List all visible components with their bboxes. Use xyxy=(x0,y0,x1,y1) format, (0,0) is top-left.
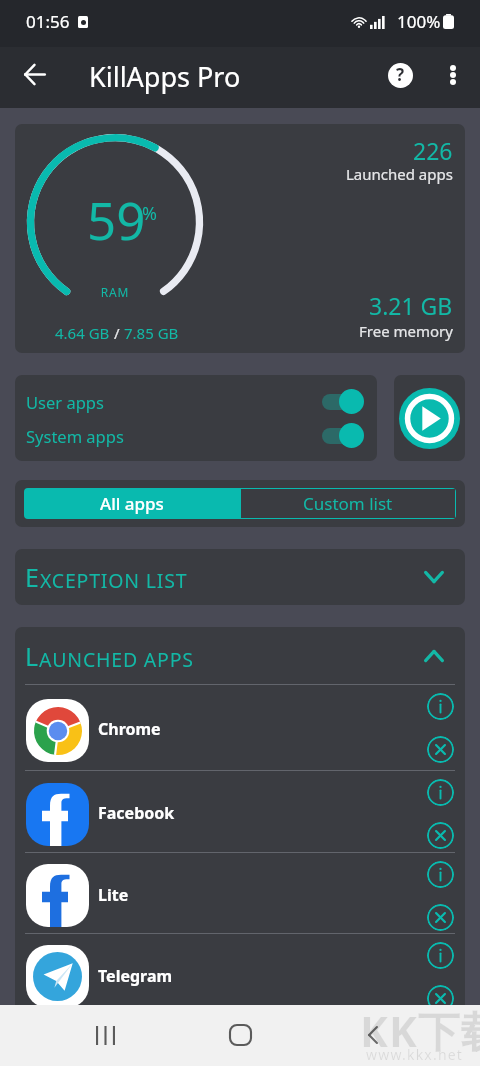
staticText: Telegram xyxy=(98,965,173,987)
button[interactable]: App info xyxy=(427,942,454,969)
staticText: Custom list xyxy=(303,492,393,515)
button[interactable]: Close app xyxy=(427,822,454,849)
button[interactable]: Close app xyxy=(427,904,454,931)
staticText: 7.85 GB xyxy=(124,323,179,343)
button[interactable]: Home xyxy=(215,1010,265,1060)
staticText: 4.64 GB xyxy=(55,323,110,343)
staticText: ? xyxy=(396,63,405,86)
staticText: KK下载 xyxy=(360,1002,480,1059)
staticText: Facebook xyxy=(98,802,175,824)
staticText: 226 xyxy=(413,135,453,166)
staticText: % xyxy=(142,201,157,226)
staticText: KillApps Pro xyxy=(89,58,241,95)
staticText: E xyxy=(25,560,40,594)
button[interactable]: App info xyxy=(427,779,454,806)
staticText: www.kkx.net xyxy=(366,1045,464,1064)
button[interactable]: Telegram xyxy=(15,933,465,1014)
button[interactable]: Kill apps xyxy=(394,375,465,461)
button[interactable]: App info xyxy=(427,693,454,720)
staticText: Lite xyxy=(98,884,129,906)
button[interactable]: User apps xyxy=(26,389,364,414)
button[interactable]: Close app xyxy=(427,736,454,763)
button[interactable]: App info xyxy=(427,861,454,888)
button[interactable]: Help xyxy=(378,53,423,98)
staticText: RAM xyxy=(40,284,190,300)
button[interactable]: Back xyxy=(348,1010,398,1060)
staticText: L xyxy=(25,639,39,673)
staticText: XCEPTION LIST xyxy=(40,567,188,594)
staticText: 3.21 GB xyxy=(369,290,453,321)
button[interactable]: L xyxy=(15,627,465,684)
staticText: 100% xyxy=(397,10,441,33)
staticText: User apps xyxy=(26,391,104,413)
staticText: All apps xyxy=(100,492,164,515)
staticText: Chrome xyxy=(98,718,161,740)
staticText: Free memory xyxy=(359,321,453,341)
button[interactable]: Custom list xyxy=(240,488,456,519)
button[interactable]: All apps xyxy=(24,488,240,519)
staticText: Launched apps xyxy=(346,164,453,184)
staticText: System apps xyxy=(26,425,124,447)
staticText: 59 xyxy=(87,185,146,254)
staticText: / xyxy=(110,323,124,343)
button[interactable]: Chrome xyxy=(15,684,465,770)
staticText: AUNCHED APPS xyxy=(39,646,194,673)
button[interactable]: Recents xyxy=(80,1010,130,1060)
button[interactable]: E xyxy=(15,549,465,605)
button[interactable]: Lite xyxy=(15,852,465,933)
button[interactable]: More options xyxy=(431,53,475,97)
staticText: 01:56 xyxy=(26,10,70,33)
button[interactable]: Close app xyxy=(427,985,454,1012)
button[interactable]: System apps xyxy=(26,423,364,448)
button[interactable]: Facebook xyxy=(15,770,465,852)
button[interactable]: Back xyxy=(13,52,57,96)
